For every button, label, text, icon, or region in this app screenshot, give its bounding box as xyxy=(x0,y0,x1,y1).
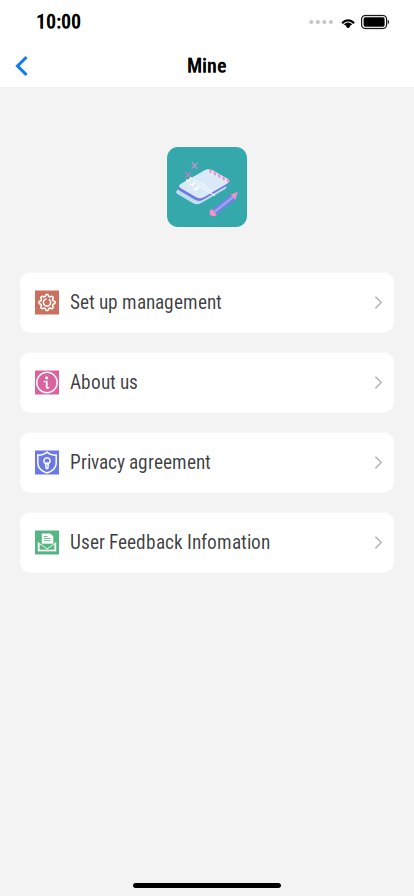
staticText: 10:00 xyxy=(36,10,81,34)
staticText: About us xyxy=(70,371,138,394)
button[interactable]: Privacy agreement xyxy=(20,432,394,492)
button[interactable]: Back xyxy=(0,44,44,88)
staticText: Mine xyxy=(187,54,227,78)
staticText: Privacy agreement xyxy=(70,451,211,474)
staticText: User Feedback Infomation xyxy=(70,531,270,554)
button[interactable]: Set up management xyxy=(20,272,394,332)
staticText: Set up management xyxy=(70,291,222,314)
button[interactable]: User Feedback Infomation xyxy=(20,512,394,572)
button[interactable]: About us xyxy=(20,352,394,412)
